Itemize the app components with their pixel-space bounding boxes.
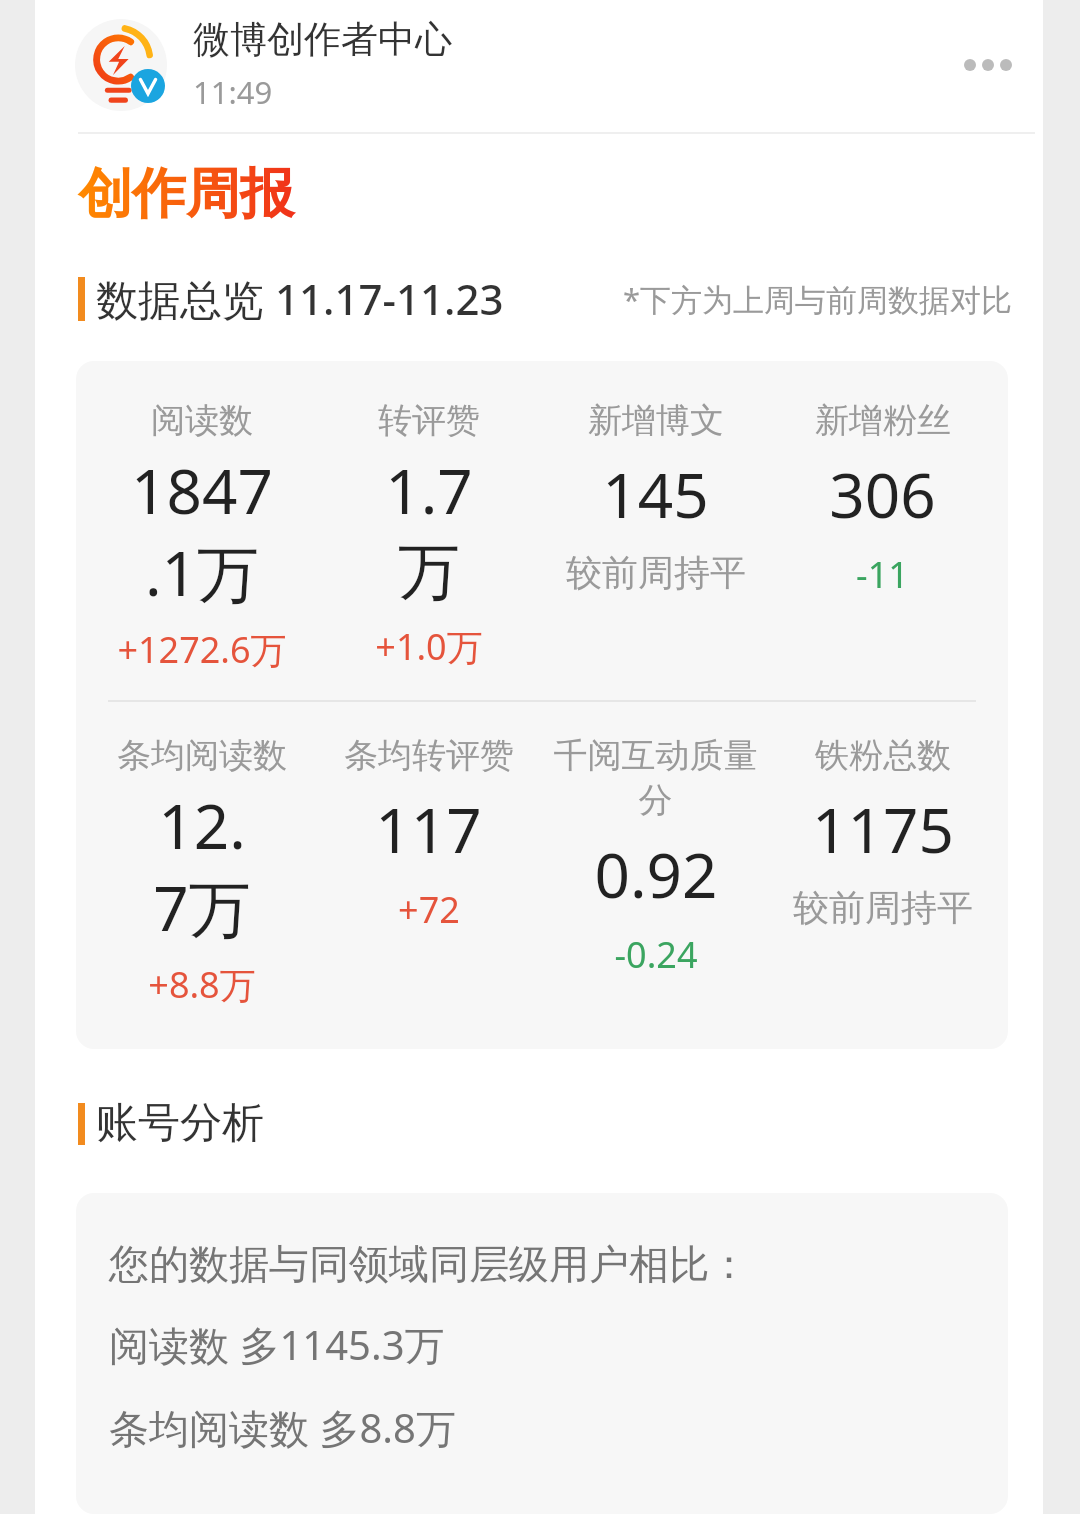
staticText: 账号分析 [96, 1097, 264, 1150]
staticText: 1175 [812, 787, 954, 871]
staticText: 11:49 [193, 71, 273, 113]
staticText: 1.7万 [384, 448, 474, 612]
staticText: -0.24 [614, 930, 698, 979]
staticText: 0.92 [594, 832, 718, 916]
staticText: *下方为上周与前周数据对比 [623, 278, 1013, 320]
staticText: 阅读数 多1145.3万 [109, 1317, 445, 1372]
staticText: +1272.6万 [117, 625, 287, 674]
staticText: 条均阅读数 多8.8万 [109, 1400, 456, 1455]
staticText: 条均转评赞 [344, 734, 514, 777]
staticText: -11 [856, 550, 909, 599]
staticText: 1847.1万 [127, 448, 277, 615]
staticText: 条均阅读数 [117, 734, 287, 777]
staticText: +8.8万 [148, 960, 256, 1009]
staticText: 较前周持平 [793, 885, 973, 930]
staticText: 较前周持平 [566, 550, 746, 595]
staticText: 新增博文 [588, 399, 724, 442]
staticText: 12.7万 [147, 783, 257, 950]
staticText: 您的数据与同领域同层级用户相比： [109, 1239, 749, 1289]
staticText: 145 [602, 452, 709, 536]
button[interactable]: More options [953, 30, 1023, 100]
staticText: 微博创作者中心 [193, 16, 452, 63]
button[interactable]: 您的数据与同领域同层级用户相比： [76, 1193, 1008, 1514]
staticText: +72 [398, 885, 460, 934]
staticText: 117 [375, 787, 482, 871]
button[interactable]: 阅读数 [76, 361, 1008, 1049]
staticText: 306 [829, 452, 936, 536]
staticText: 千阅互动质量分 [542, 734, 769, 822]
staticText: 创作周报 [78, 160, 294, 228]
staticText: +1.0万 [375, 622, 483, 671]
staticText: 阅读数 [151, 399, 253, 442]
staticText: 转评赞 [378, 399, 480, 442]
staticText: 新增粉丝 [815, 399, 951, 442]
staticText: 铁粉总数 [815, 734, 951, 777]
staticText: 数据总览 11.17-11.23 [96, 270, 504, 327]
